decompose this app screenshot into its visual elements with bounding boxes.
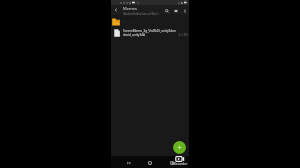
staticText: 20.4 MB (178, 33, 188, 37)
staticText: XRecorder (172, 162, 188, 166)
staticText: ScreenMemo_3g_Vw0546_unity3dandroid_unit… (123, 29, 177, 37)
button[interactable]: Memos (111, 16, 189, 27)
button[interactable]: Recents (168, 159, 176, 167)
button[interactable]: Home (146, 159, 154, 167)
button[interactable]: Search (162, 6, 171, 15)
button[interactable]: Add (173, 141, 186, 154)
staticText: /Android/data/com.xx/files/Memos/ (123, 12, 162, 15)
button[interactable]: More options (180, 6, 189, 15)
button[interactable]: Back (111, 5, 121, 15)
staticText: Memos (123, 6, 137, 11)
button[interactable]: Switch view (171, 6, 180, 15)
button[interactable]: Back (125, 159, 133, 167)
button[interactable]: ScreenMemo_3g_Vw0546_unity3dandroid_unit… (111, 27, 189, 38)
